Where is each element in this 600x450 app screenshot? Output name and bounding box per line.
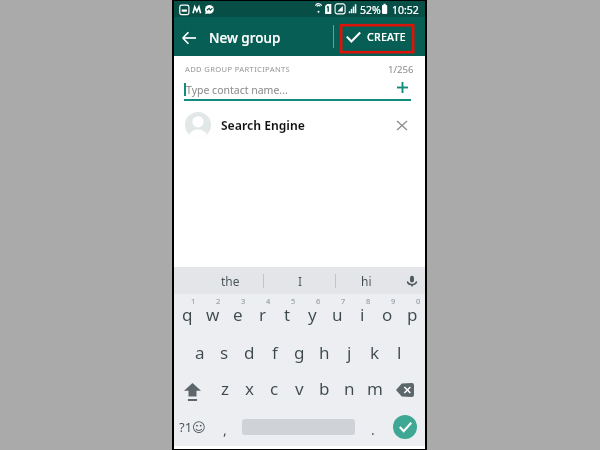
staticText: y	[308, 303, 317, 326]
button[interactable]: 1	[174, 294, 200, 332]
button[interactable]: Add contact	[394, 79, 410, 95]
button[interactable]: Back	[177, 26, 200, 49]
staticText: r	[259, 303, 267, 326]
button[interactable]: h	[312, 332, 337, 370]
button[interactable]: s	[212, 332, 237, 370]
staticText: 7	[341, 296, 346, 306]
staticText: g	[294, 341, 305, 364]
button[interactable]: Remove	[393, 116, 411, 134]
button[interactable]: j	[337, 332, 362, 370]
button[interactable]: CREATE	[341, 17, 417, 56]
staticText: t	[284, 303, 291, 326]
button[interactable]: d	[237, 332, 262, 370]
staticText: o	[382, 303, 393, 326]
staticText: 8	[366, 296, 371, 306]
staticText: hi	[361, 273, 372, 289]
staticText: m	[367, 377, 383, 400]
button[interactable]: 5	[275, 294, 300, 332]
button[interactable]: hi	[336, 267, 397, 294]
staticText: k	[370, 341, 380, 364]
staticText: d	[244, 341, 255, 364]
staticText: CREATE	[367, 30, 406, 44]
button[interactable]: c	[262, 370, 287, 408]
staticText: 3	[241, 296, 246, 306]
button[interactable]: Voice input	[399, 267, 425, 294]
button[interactable]: Symbols	[174, 409, 210, 447]
staticText: 9	[391, 296, 396, 306]
staticText: 52%	[360, 3, 381, 17]
button[interactable]: n	[337, 370, 362, 408]
button[interactable]: a	[187, 332, 212, 370]
staticText: f	[272, 341, 278, 364]
button[interactable]: 8	[350, 294, 375, 332]
staticText: 1/256	[388, 63, 414, 76]
button[interactable]: b	[312, 370, 337, 408]
button[interactable]: Search Engine	[174, 104, 425, 145]
staticText: z	[221, 377, 229, 400]
staticText: New group	[209, 29, 281, 47]
button[interactable]: 4	[250, 294, 275, 332]
button[interactable]: l	[387, 332, 412, 370]
staticText: Search Engine	[221, 117, 305, 133]
staticText: c	[270, 377, 279, 400]
button[interactable]: f	[262, 332, 287, 370]
staticText: b	[319, 377, 330, 400]
button[interactable]: Space	[238, 409, 361, 447]
button[interactable]: 2	[200, 294, 225, 332]
staticText: ,	[223, 420, 227, 439]
staticText: 6	[316, 296, 321, 306]
staticText: 2	[216, 296, 221, 306]
button[interactable]: 3	[225, 294, 250, 332]
staticText: 0	[416, 296, 421, 306]
staticText: n	[344, 377, 355, 400]
staticText: e	[233, 303, 243, 326]
staticText: j	[347, 341, 352, 364]
staticText: ADD GROUP PARTICIPANTS	[185, 64, 291, 74]
button[interactable]: 6	[300, 294, 325, 332]
button[interactable]: Shift	[174, 370, 209, 408]
staticText: ?1☺	[179, 418, 206, 436]
staticText: .	[371, 420, 375, 439]
button[interactable]: m	[362, 370, 387, 408]
staticText: s	[220, 341, 229, 364]
staticText: h	[319, 341, 330, 364]
staticText: q	[182, 303, 193, 326]
staticText: u	[332, 303, 343, 326]
button[interactable]: .	[360, 409, 386, 447]
button[interactable]: Backspace	[387, 370, 422, 408]
button[interactable]: g	[287, 332, 312, 370]
staticText: Type contact name...	[186, 83, 288, 97]
staticText: v	[295, 377, 304, 400]
button[interactable]: ,	[212, 409, 237, 447]
button[interactable]: Enter	[386, 409, 425, 447]
button[interactable]: z	[212, 370, 237, 408]
staticText: 4	[266, 296, 271, 306]
button[interactable]: v	[287, 370, 312, 408]
button[interactable]: 7	[325, 294, 350, 332]
staticText: 10:52	[392, 3, 419, 17]
staticText: 1	[191, 296, 196, 306]
button[interactable]: I	[264, 267, 336, 294]
button[interactable]: k	[362, 332, 387, 370]
staticText: x	[245, 377, 254, 400]
staticText: a	[195, 341, 205, 364]
staticText: the	[221, 273, 240, 289]
staticText: I	[298, 273, 303, 289]
staticText: 5	[291, 296, 296, 306]
button[interactable]: 9	[375, 294, 400, 332]
staticText: l	[397, 341, 402, 364]
staticText: w	[206, 303, 220, 326]
staticText: p	[407, 303, 418, 326]
button[interactable]: 0	[400, 294, 425, 332]
staticText: i	[360, 303, 365, 326]
button[interactable]: the	[194, 267, 267, 294]
button[interactable]: x	[237, 370, 262, 408]
